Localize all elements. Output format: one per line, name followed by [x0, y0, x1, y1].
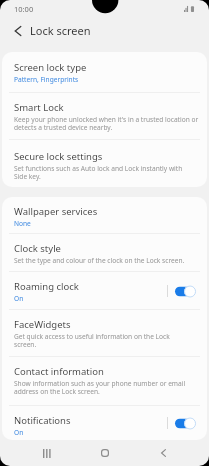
staticText: On — [14, 294, 24, 303]
button[interactable]: Home — [76, 440, 134, 466]
staticText: On — [14, 428, 24, 437]
button[interactable]: Recent apps — [17, 440, 76, 466]
button[interactable]: Notifications — [2, 406, 207, 440]
staticText: Pattern, Fingerprints — [14, 75, 79, 84]
button[interactable]: Wallpaper services — [2, 197, 207, 234]
button[interactable]: FaceWidgets — [2, 310, 207, 357]
staticText: Wallpaper services — [14, 205, 98, 218]
button[interactable]: Navigate up — [8, 21, 28, 41]
staticText: Roaming clock — [14, 280, 79, 293]
button[interactable]: Back — [134, 440, 192, 466]
button[interactable]: Clock style — [2, 234, 207, 272]
button[interactable]: Smart Lock — [2, 93, 207, 140]
button[interactable]: Secure lock settings — [2, 140, 207, 187]
staticText: None — [14, 219, 31, 228]
staticText: Clock style — [14, 242, 61, 255]
button[interactable]: Screen lock type — [2, 52, 207, 93]
staticText: Lock screen — [30, 23, 91, 38]
button[interactable]: Roaming clock — [2, 272, 207, 310]
button[interactable]: Contact information — [2, 357, 207, 406]
button[interactable]: Toggle on — [175, 417, 196, 430]
staticText: Notifications — [14, 414, 71, 427]
staticText: Smart Lock — [14, 101, 64, 114]
staticText: 10:00 — [14, 4, 34, 14]
staticText: FaceWidgets — [14, 318, 71, 331]
staticText: Secure lock settings — [14, 150, 103, 163]
staticText: Keep your phone unlocked when it's in a … — [14, 115, 199, 132]
staticText: Show information such as your phone numb… — [14, 379, 186, 396]
staticText: Get quick access to useful information o… — [14, 332, 170, 349]
staticText: Set functions such as Auto lock and Lock… — [14, 164, 183, 181]
staticText: Screen lock type — [14, 61, 87, 74]
staticText: Set the type and colour of the clock on … — [14, 256, 185, 265]
button[interactable]: Toggle on — [175, 285, 196, 298]
staticText: Contact information — [14, 365, 104, 378]
